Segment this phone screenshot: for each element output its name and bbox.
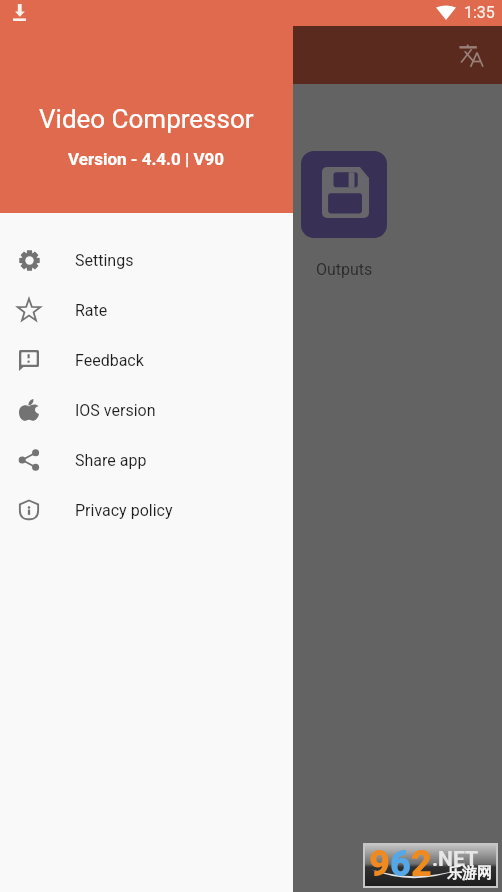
button[interactable]: Share app — [0, 435, 293, 485]
button[interactable]: Privacy policy — [0, 485, 293, 535]
button[interactable]: IOS version — [0, 385, 293, 435]
staticText: 2 — [411, 843, 432, 884]
button[interactable]: Settings — [0, 235, 293, 285]
staticText: Share app — [75, 451, 147, 470]
staticText: Settings — [75, 251, 134, 270]
button[interactable]: Feedback — [0, 335, 293, 385]
button[interactable]: Rate — [0, 285, 293, 335]
staticText: 1:35 — [464, 3, 495, 22]
staticText: Video Compressor — [39, 104, 254, 134]
staticText: .NET — [432, 847, 478, 872]
staticText: Outputs — [316, 260, 373, 279]
staticText: 9 — [369, 843, 390, 884]
button[interactable] — [301, 151, 387, 238]
staticText: Version - 4.4.0 | V90 — [68, 149, 225, 169]
staticText: Feedback — [75, 351, 144, 370]
button[interactable]: Translate — [448, 32, 496, 80]
staticText: Rate — [75, 301, 108, 320]
staticText: Privacy policy — [75, 501, 173, 520]
staticText: 6 — [390, 843, 411, 884]
staticText: 乐游网 — [447, 864, 492, 883]
staticText: IOS version — [75, 401, 156, 420]
